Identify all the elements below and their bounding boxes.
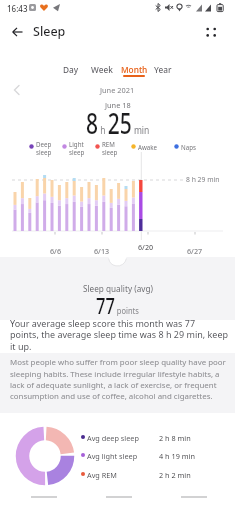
button[interactable]: Avg deep sleep [76, 429, 235, 445]
staticText: Day [63, 64, 79, 75]
staticText: sleep [69, 148, 85, 156]
staticText: Deep [36, 140, 52, 148]
staticText: June 18 [105, 100, 131, 110]
staticText: Month [121, 64, 148, 75]
staticText: 77 points [96, 291, 139, 319]
staticText: Naps [181, 143, 196, 151]
button[interactable] [6, 21, 28, 43]
staticText: 6/27 [187, 246, 203, 256]
staticText: 2 h 8 min [159, 433, 191, 443]
staticText: 8 h 29 min [186, 175, 220, 184]
button[interactable]: Day [51, 62, 91, 76]
staticText: Avg REM [87, 470, 117, 480]
staticText: 6/13 [94, 246, 110, 256]
staticText: 8 h 25 min [86, 104, 150, 143]
button[interactable]: Month [114, 62, 154, 76]
staticText: Sleep quality (avg) [83, 283, 153, 294]
staticText: Most people who suffer from poor sleep q… [10, 357, 235, 401]
staticText: Avg light sleep [87, 451, 138, 461]
button[interactable] [198, 19, 224, 45]
staticText: Week [91, 64, 113, 75]
button[interactable] [12, 84, 22, 96]
staticText: Sleep [33, 23, 66, 40]
staticText: Year [154, 64, 172, 75]
button[interactable]: Year [143, 62, 183, 76]
staticText: REM [102, 140, 115, 148]
button[interactable]: Avg REM [76, 466, 235, 482]
staticText: 16:43 [7, 3, 28, 14]
staticText: sleep [102, 148, 118, 156]
button[interactable]: Avg light sleep [76, 447, 235, 463]
staticText: 4 h 19 min [159, 451, 195, 461]
staticText: sleep [36, 148, 52, 156]
staticText: 6/6 [50, 246, 61, 256]
staticText: 2 h 2 min [159, 470, 191, 480]
button[interactable]: Week [82, 62, 122, 76]
button[interactable] [105, 254, 130, 268]
staticText: Light [69, 140, 84, 148]
staticText: Awake [138, 143, 158, 151]
staticText: 6/20 [138, 242, 154, 252]
staticText: Your average sleep score this month was … [10, 317, 235, 353]
staticText: June 2021 [100, 85, 135, 95]
staticText: Avg deep sleep [87, 433, 139, 443]
